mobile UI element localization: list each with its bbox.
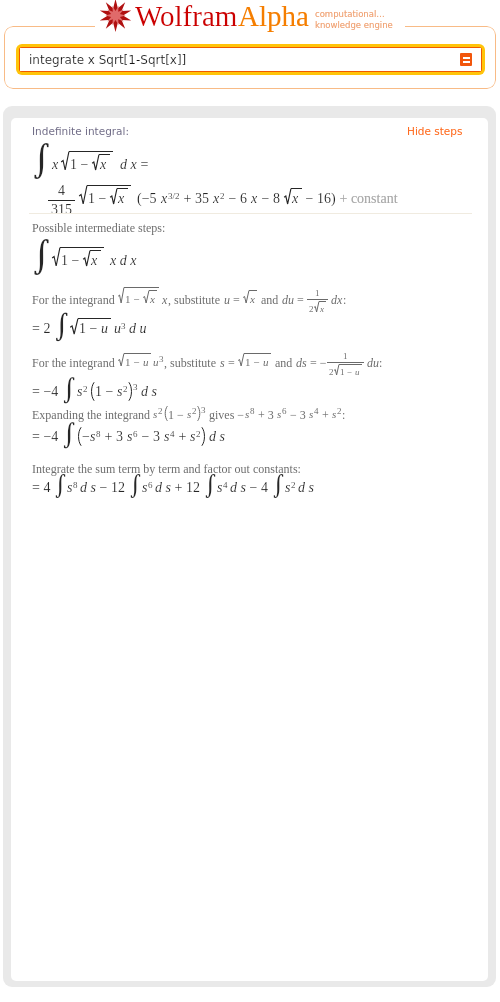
- staticText: s: [285, 480, 291, 496]
- staticText: + constant: [336, 191, 398, 207]
- staticText: s: [217, 480, 223, 496]
- staticText: 1: [315, 288, 320, 298]
- button[interactable]: Hide steps: [407, 125, 463, 137]
- staticText: x: [100, 157, 107, 173]
- staticText: s: [220, 356, 225, 369]
- staticText: − 16): [302, 191, 336, 207]
- button[interactable]: Submit: [460, 53, 472, 66]
- staticText: 1 −: [79, 321, 101, 337]
- staticText: d s: [80, 480, 96, 496]
- staticText: +: [175, 429, 190, 445]
- staticText: For the integrand: [32, 293, 118, 306]
- staticText: 1: [343, 351, 348, 361]
- staticText: u: [143, 356, 149, 368]
- staticText: 6: [133, 429, 138, 439]
- staticText: s: [117, 384, 123, 400]
- staticText: d s: [230, 480, 246, 496]
- staticText: 3: [121, 321, 126, 331]
- staticText: 6: [282, 406, 287, 416]
- staticText: For the integrand: [32, 356, 118, 369]
- staticText: − 6: [225, 191, 251, 207]
- button[interactable]: integrate x Sqrt[1-Sqrt[x]]: [20, 48, 481, 71]
- staticText: 2: [309, 304, 314, 314]
- staticText: +: [319, 408, 332, 421]
- staticText: integrate x Sqrt[1-Sqrt[x]]: [29, 53, 460, 67]
- staticText: 1 −: [95, 384, 117, 400]
- staticText: Possible intermediate steps:: [32, 221, 166, 234]
- staticText: 315: [51, 202, 72, 218]
- staticText: Alpha: [238, 0, 309, 32]
- staticText: 4: [170, 429, 175, 439]
- staticText: − 3: [138, 429, 164, 445]
- staticText: 1 −: [88, 191, 110, 207]
- staticText: 2: [291, 480, 296, 490]
- staticText: , substitute: [168, 293, 224, 306]
- staticText: − 8: [258, 191, 284, 207]
- staticText: x: [250, 293, 255, 305]
- staticText: ∫: [62, 423, 77, 447]
- staticText: = −4: [32, 384, 62, 400]
- staticText: 1 −: [61, 253, 83, 269]
- staticText: Integrate the sum term by term and facto…: [32, 462, 301, 475]
- staticText: du: [364, 356, 379, 369]
- staticText: x: [52, 157, 59, 173]
- staticText: 2: [337, 406, 342, 416]
- staticText: Expanding the integrand: [32, 408, 153, 421]
- staticText: 1 −: [70, 157, 92, 173]
- staticText: :: [343, 293, 347, 306]
- staticText: computational…: [315, 9, 385, 19]
- staticText: s: [77, 384, 83, 400]
- staticText: 2: [220, 191, 225, 201]
- staticText: 2: [158, 406, 163, 416]
- staticText: 6: [148, 480, 153, 490]
- staticText: =: [137, 157, 152, 173]
- staticText: ∫: [204, 475, 217, 497]
- staticText: :: [379, 356, 383, 369]
- staticText: 2: [329, 367, 334, 377]
- staticText: d s: [141, 384, 157, 400]
- staticText: u: [114, 321, 121, 337]
- staticText: and: [261, 293, 282, 306]
- staticText: ∫: [32, 240, 52, 273]
- staticText: gives −: [206, 408, 245, 421]
- staticText: ds: [296, 356, 307, 369]
- staticText: , substitute: [164, 356, 220, 369]
- staticText: − 3: [287, 408, 309, 421]
- staticText: 3: [159, 354, 164, 364]
- staticText: =: [230, 293, 243, 306]
- staticText: = 2: [32, 321, 54, 337]
- staticText: 8: [250, 406, 255, 416]
- staticText: s: [190, 429, 196, 445]
- staticText: 2: [83, 384, 88, 394]
- staticText: + 3: [255, 408, 277, 421]
- staticText: x: [118, 191, 125, 207]
- staticText: :: [342, 408, 346, 421]
- staticText: knowledge engine: [315, 20, 393, 30]
- staticText: s: [332, 408, 337, 420]
- staticText: u: [153, 356, 159, 368]
- staticText: d s: [155, 480, 171, 496]
- staticText: u: [263, 356, 269, 368]
- staticText: + 3: [101, 429, 127, 445]
- staticText: 8: [73, 480, 78, 490]
- staticText: x d x: [110, 253, 137, 269]
- staticText: d u: [129, 321, 147, 337]
- staticText: x: [162, 293, 168, 306]
- staticText: (−5: [137, 191, 161, 207]
- staticText: s: [245, 408, 250, 420]
- staticText: 4: [58, 183, 65, 199]
- staticText: x: [161, 191, 168, 207]
- staticText: − 4: [246, 480, 272, 496]
- staticText: 1 −: [340, 367, 355, 377]
- staticText: Wolfram: [135, 0, 238, 32]
- staticText: dx: [328, 293, 343, 306]
- staticText: d x: [120, 157, 137, 173]
- staticText: = 4: [32, 480, 54, 496]
- staticText: s: [187, 408, 192, 420]
- staticText: x: [251, 191, 258, 207]
- staticText: 3: [133, 382, 138, 392]
- staticText: ∫: [32, 144, 52, 177]
- staticText: + 35: [180, 191, 213, 207]
- staticText: 2: [192, 406, 197, 416]
- button[interactable]: Indefinite integral:: [32, 125, 129, 137]
